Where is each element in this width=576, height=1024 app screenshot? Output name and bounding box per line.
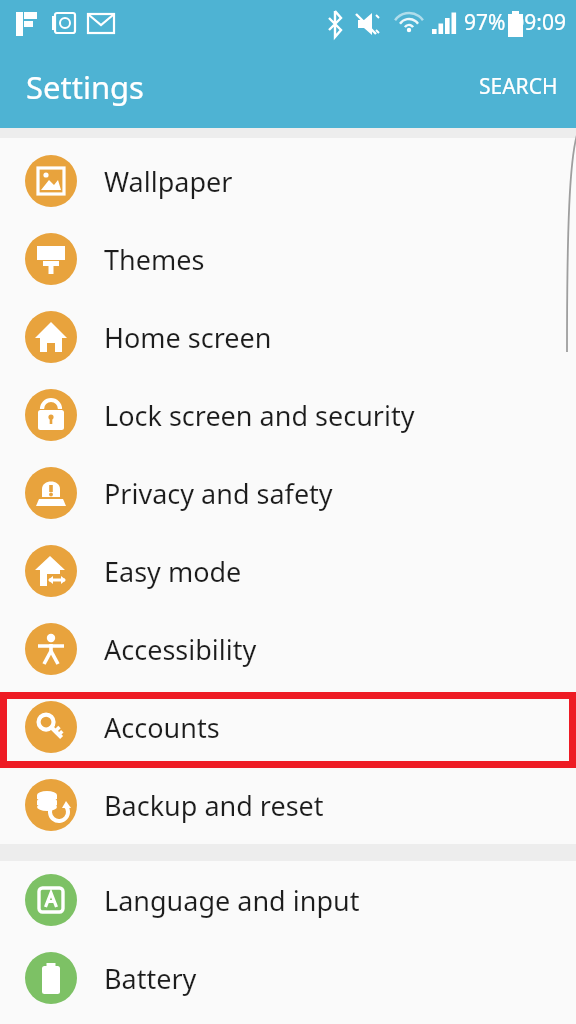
button[interactable]: Themes — [0, 220, 576, 298]
staticText: Accessibility — [104, 631, 257, 668]
staticText: Privacy and safety — [104, 475, 333, 512]
button[interactable]: Accessibility — [0, 610, 576, 688]
staticText: Home screen — [104, 319, 272, 356]
button[interactable]: Easy mode — [0, 532, 576, 610]
button[interactable]: Backup and reset — [0, 766, 576, 844]
staticText: Backup and reset — [104, 787, 324, 824]
button[interactable]: Wallpaper — [0, 142, 576, 220]
staticText: Settings — [26, 66, 144, 108]
staticText: 97% — [464, 8, 506, 37]
staticText: Wallpaper — [104, 163, 233, 200]
staticText: Battery — [104, 960, 197, 997]
staticText: 09:09 — [0, 8, 566, 37]
button[interactable]: Language and input — [0, 861, 576, 939]
staticText: SEARCH — [479, 72, 558, 101]
button[interactable]: SEARCH — [461, 56, 576, 117]
staticText: Lock screen and security — [104, 397, 415, 434]
button[interactable]: Battery — [0, 939, 576, 1017]
staticText: Easy mode — [104, 553, 242, 590]
button[interactable]: Accounts — [0, 688, 576, 766]
staticText: Accounts — [104, 709, 220, 746]
button[interactable]: Lock screen and security — [0, 376, 576, 454]
staticText: Language and input — [104, 882, 360, 919]
button[interactable]: Home screen — [0, 298, 576, 376]
staticText: Themes — [104, 241, 205, 278]
button[interactable]: Privacy and safety — [0, 454, 576, 532]
